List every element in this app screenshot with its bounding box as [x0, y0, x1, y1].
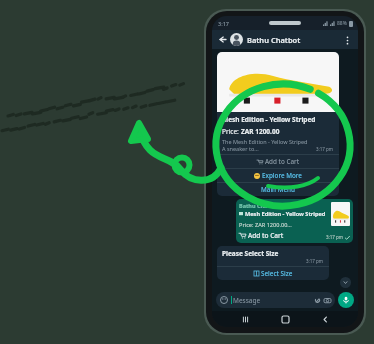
- staticText: 3:17 pm: [306, 258, 324, 264]
- button[interactable]: Mesh Edition - Yellow Striped: [217, 52, 339, 196]
- staticText: 3:17 pm: [326, 234, 344, 240]
- staticText: Select Size: [261, 269, 293, 278]
- staticText: Add to Cart: [248, 231, 284, 240]
- button[interactable]: Back: [217, 34, 228, 45]
- staticText: Please Select Size: [222, 249, 279, 258]
- button[interactable]: Add to Cart: [217, 155, 339, 168]
- staticText: Main Menu: [261, 185, 295, 194]
- button[interactable]: Recents: [238, 312, 252, 326]
- button[interactable]: Main Menu: [217, 183, 339, 196]
- staticText: Message: [233, 296, 261, 305]
- button[interactable]: Bathu Chatbot: [236, 199, 353, 243]
- staticText: Price:: [222, 127, 241, 136]
- other: Attach: [314, 297, 321, 304]
- button[interactable]: More options: [341, 34, 353, 46]
- button[interactable]: Scroll to bottom: [340, 277, 351, 288]
- other: Camera: [324, 297, 331, 304]
- button[interactable]: Bathu Chatbot: [247, 35, 341, 45]
- staticText: Mesh Edition - Yellow Striped: [245, 210, 326, 218]
- button[interactable]: Explore More: [217, 169, 339, 182]
- staticText: Mesh Edition - Yellow Striped: [222, 115, 316, 124]
- staticText: 3:17: [218, 20, 229, 27]
- button[interactable]: Voice message: [338, 292, 354, 308]
- staticText: Explore More: [262, 171, 302, 180]
- button[interactable]: Select Size: [217, 267, 329, 280]
- button[interactable]: Home: [278, 312, 292, 326]
- button[interactable]: Message: [216, 292, 335, 308]
- button[interactable]: Please Select Size: [217, 246, 329, 280]
- button[interactable]: Back: [318, 312, 332, 326]
- staticText: Price: ZAR 1200.00...: [239, 221, 292, 229]
- staticText: Bathu Chatbot: [239, 202, 280, 209]
- staticText: The Mesh Edition - Yellow Striped: [222, 138, 308, 145]
- staticText: Add to Cart: [265, 157, 300, 166]
- staticText: ZAR 1200.00: [241, 127, 280, 136]
- staticText: 88%: [337, 20, 347, 27]
- staticText: 3:17 pm: [316, 146, 334, 152]
- staticText: A sneaker to...: [222, 145, 259, 152]
- button[interactable]: Profile photo: [230, 33, 243, 46]
